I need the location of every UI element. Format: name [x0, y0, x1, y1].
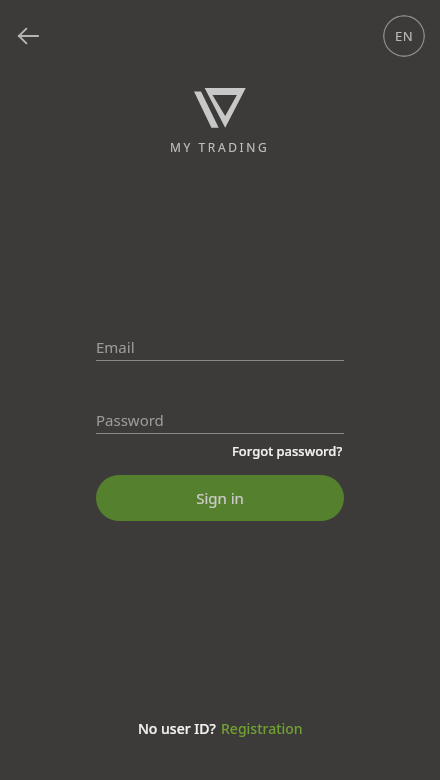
button[interactable]: Forgot password? — [231, 441, 344, 461]
button[interactable]: Email — [96, 333, 344, 360]
button[interactable]: Registration — [221, 719, 303, 738]
staticText: Forgot password? — [232, 442, 343, 460]
button[interactable]: Sign in — [96, 475, 344, 521]
button[interactable]: EN — [383, 15, 425, 57]
staticText: Email — [96, 337, 135, 357]
staticText: Sign in — [196, 488, 244, 508]
button[interactable]: Back — [10, 18, 46, 54]
staticText: Registration — [221, 719, 303, 738]
staticText: No user ID? — [138, 719, 216, 738]
staticText: MY TRADING — [170, 139, 270, 155]
staticText: Password — [96, 410, 164, 430]
staticText: EN — [395, 27, 413, 45]
button[interactable]: Password — [96, 406, 344, 433]
